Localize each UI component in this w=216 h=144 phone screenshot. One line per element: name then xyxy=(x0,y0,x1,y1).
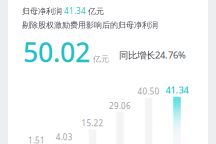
staticText: 15.22 xyxy=(81,118,103,128)
staticText: 29.06 xyxy=(109,100,131,111)
staticText: 同比增长24.76% xyxy=(119,49,186,61)
staticText: 40.50 xyxy=(137,86,159,97)
staticText: 1.51 xyxy=(28,135,45,144)
staticText: 亿元 xyxy=(86,6,104,16)
staticText: 亿元 xyxy=(93,54,109,64)
staticText: 归母净利润 xyxy=(22,6,64,16)
staticText: 50.02 xyxy=(23,34,90,70)
staticText: 剔除股权激励费用影响后的归母净利润 xyxy=(22,20,158,30)
staticText: 4.03 xyxy=(56,132,73,142)
staticText: 41.34 xyxy=(64,6,86,16)
staticText: 41.34 xyxy=(165,84,188,96)
